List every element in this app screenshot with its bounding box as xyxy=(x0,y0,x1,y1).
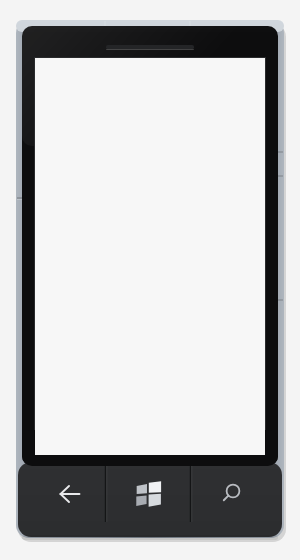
button[interactable]: Back xyxy=(18,462,105,537)
button[interactable]: Start xyxy=(106,462,190,537)
button[interactable]: Search xyxy=(191,462,282,537)
